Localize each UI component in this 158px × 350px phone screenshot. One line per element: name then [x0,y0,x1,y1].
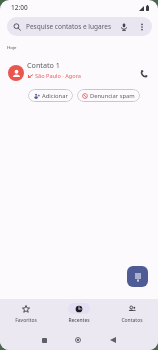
staticText: Denunciar spam [90,92,135,100]
button[interactable]: Favoritos [0,303,52,324]
button[interactable]: Início [72,334,84,346]
button[interactable]: Mais opções [135,20,148,33]
staticText: Recentes [68,317,90,324]
staticText: Contatos [121,317,143,324]
staticText: Favoritos [15,317,37,324]
staticText: São Paulo · Agora [35,72,81,80]
staticText: Contato 1 [27,60,60,70]
button[interactable]: Recentes [52,303,105,324]
staticText: 12:00 [11,3,28,12]
button[interactable]: Apps recentes [38,334,50,346]
button[interactable]: Denunciar spam [77,89,140,102]
button[interactable]: Contatos [105,303,158,324]
staticText: Pesquise contatos e lugares [26,22,112,31]
button[interactable]: Pesquisa por voz [117,20,130,33]
button[interactable]: Adicionar [28,89,73,102]
button[interactable]: Contato 1 [0,59,158,87]
staticText: Hoje [7,44,17,50]
button[interactable]: Teclado numérico [127,266,148,287]
staticText: Adicionar [42,92,68,100]
button[interactable]: Voltar [107,334,119,346]
button[interactable]: Ligar [135,64,153,82]
button[interactable]: Pesquise contatos e lugares [7,17,152,36]
